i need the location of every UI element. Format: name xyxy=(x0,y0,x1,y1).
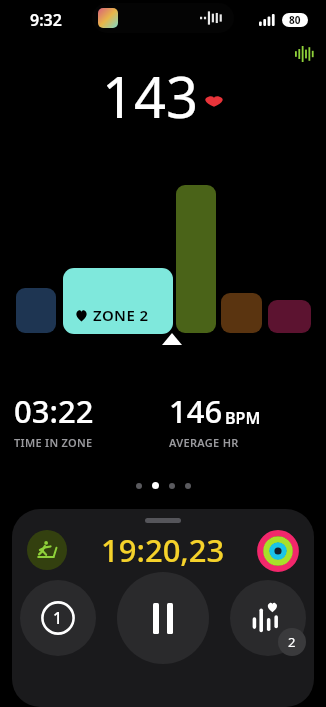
staticText: 2 xyxy=(288,633,296,651)
staticText: TIME IN ZONE xyxy=(14,435,93,450)
button[interactable]: Activity rings xyxy=(257,530,299,572)
staticText: 19:20,23 xyxy=(101,529,225,571)
staticText: 03:22 xyxy=(14,390,94,432)
staticText: BPM xyxy=(225,407,261,429)
staticText: 143 xyxy=(102,58,199,134)
button[interactable]: Lap 1 xyxy=(20,580,96,656)
staticText: ZONE 2 xyxy=(93,305,149,325)
staticText: 80 xyxy=(289,13,301,27)
staticText: AVERAGE HR xyxy=(169,435,239,450)
staticText: 146 xyxy=(169,390,223,432)
button[interactable]: Pause workout xyxy=(117,572,209,664)
staticText: 9:32 xyxy=(30,9,62,31)
button[interactable]: Workout type: treadmill run xyxy=(27,530,67,570)
button[interactable]: Heart rate details, 2 notifications xyxy=(230,580,306,656)
staticText: 1 xyxy=(53,607,63,629)
button[interactable]: ZONE 2 xyxy=(63,268,173,334)
